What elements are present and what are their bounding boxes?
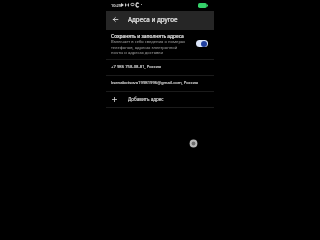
button[interactable]: Сохранять и заполнять адреса — [106, 28, 214, 59]
staticText: Сохранять и заполнять адреса — [111, 33, 184, 40]
button[interactable]: Сохранять и заполнять адреса — [196, 40, 208, 47]
button[interactable]: ksenabotsova19981996@gmail.com, Россия — [106, 75, 214, 91]
button[interactable]: Добавить адрес — [106, 91, 214, 107]
button[interactable]: Назад — [108, 11, 122, 30]
staticText: +7 986 758-08-81, Россия — [111, 64, 161, 70]
staticText: 10:29 — [111, 3, 121, 8]
staticText: Добавить адрес — [128, 96, 164, 102]
staticText: Адреса и другое — [128, 15, 178, 24]
staticText: ksenabotsova19981996@gmail.com, Россия — [111, 80, 198, 86]
staticText: Включает в себя сведения о номерах телеф… — [111, 39, 187, 55]
button[interactable]: +7 986 758-08-81, Россия — [106, 59, 214, 75]
